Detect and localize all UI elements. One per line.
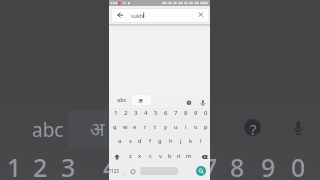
button[interactable]: y [161,122,171,132]
staticText: , [123,169,125,176]
button[interactable]: v [155,151,165,161]
button[interactable]: l [196,136,206,146]
staticText: 8 [184,109,188,117]
button[interactable]: z [125,151,135,161]
button[interactable]: k [186,136,196,146]
staticText: h [169,137,173,145]
staticText: 7 [203,150,218,180]
staticText: i [185,123,187,131]
button[interactable]: w [120,122,130,132]
staticText: 9 [194,109,198,117]
staticText: 9 [261,150,276,180]
staticText: z [129,152,132,160]
staticText: 3 [134,109,138,117]
staticText: 1 [114,109,118,117]
staticText: j [180,137,182,145]
staticText: v [159,152,162,160]
button[interactable]: 4 [141,108,151,118]
staticText: s [129,137,132,145]
staticText: t [154,123,157,131]
staticText: 4 [144,109,148,117]
staticText: y [164,123,168,131]
staticText: k [189,137,193,145]
button[interactable]: 0 [201,108,211,118]
button[interactable]: q [110,122,120,132]
button[interactable]: c [145,151,155,161]
staticText: 5 [154,109,158,117]
staticText: f [149,137,152,145]
button[interactable]: s [125,136,135,146]
button[interactable]: a [115,136,125,146]
button[interactable]: 7 [171,108,181,118]
button[interactable] [196,166,206,176]
button[interactable]: 8 [181,108,191,118]
button[interactable]: j [176,136,186,146]
button[interactable]: 9 [191,108,201,118]
staticText: 8 [230,150,245,180]
staticText: अ [90,116,105,142]
button[interactable]: f [145,136,155,146]
staticText: l [200,137,202,145]
staticText: u [174,123,178,131]
button[interactable] [132,95,151,105]
button[interactable]: b [165,151,175,161]
button[interactable] [111,8,209,23]
staticText: 0 [204,109,208,117]
button[interactable]: ?123 [107,166,121,176]
staticText: abc [32,117,64,143]
staticText: g [158,137,162,145]
button[interactable]: d [135,136,145,146]
button[interactable]: t [150,122,160,132]
button[interactable]: 1 [111,108,121,118]
button[interactable]: 3 [131,108,141,118]
staticText: x [138,152,142,160]
staticText: 2 [124,109,128,117]
staticText: 2 [33,150,48,180]
staticText: e [133,123,137,131]
staticText: 4 [103,150,118,180]
button[interactable]: sukhi [128,10,148,20]
button[interactable]: p [201,122,211,132]
button[interactable]: h [166,136,176,146]
button[interactable]: 2 [121,108,131,118]
staticText: sukhi [131,12,145,19]
staticText: p [204,123,208,131]
button[interactable]: m [184,151,194,161]
button[interactable]: g [155,136,165,146]
button[interactable]: r [140,122,150,132]
staticText: n [177,152,181,160]
button[interactable]: x [135,151,145,161]
staticText: o [194,123,198,131]
staticText: abc [117,96,127,104]
staticText: w [123,123,128,131]
button[interactable]: u [171,122,181,132]
staticText: m [186,152,192,160]
staticText: ? [250,119,257,137]
staticText: ?123 [109,168,119,174]
staticText: 1 [7,150,22,180]
staticText: r [144,123,147,131]
button[interactable]: e [130,122,140,132]
staticText: b [168,152,172,160]
staticText: 6 [164,109,168,117]
staticText: 7 [174,109,178,117]
button[interactable]: o [191,122,201,132]
button[interactable]: 6 [161,108,171,118]
staticText: q [113,123,117,131]
staticText: 3 [61,150,76,180]
button[interactable]: i [181,122,191,132]
staticText: d [138,137,142,145]
button[interactable]: , [120,167,128,177]
button[interactable]: n [174,151,184,161]
button[interactable]: abc [114,95,130,105]
staticText: a [118,137,122,145]
staticText: अ [138,97,143,105]
staticText: c [149,152,152,160]
button[interactable]: 5 [151,108,161,118]
staticText: 0 [291,150,306,180]
